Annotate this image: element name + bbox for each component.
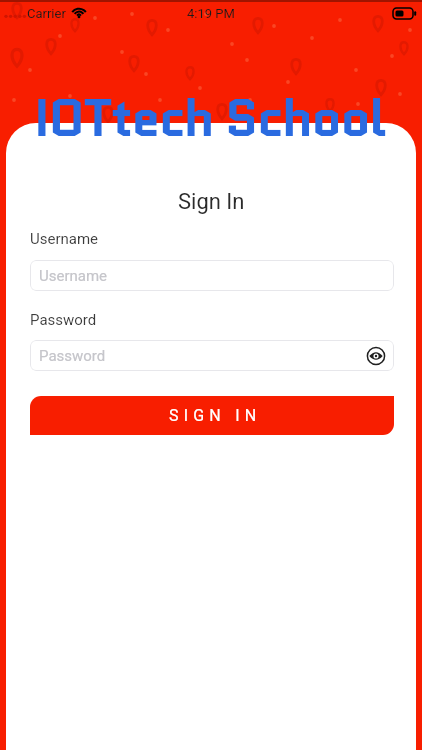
staticText: Username	[39, 267, 108, 285]
staticText: SIGN IN	[169, 406, 262, 425]
staticText: IOTtech School	[34, 82, 385, 155]
staticText: Username	[30, 230, 99, 248]
button[interactable]: Password	[30, 340, 394, 371]
staticText: Password	[39, 347, 106, 365]
staticText: Sign In	[178, 189, 245, 215]
button[interactable]: Show password	[365, 345, 387, 367]
staticText: 4:19 PM	[187, 6, 235, 21]
staticText: Carrier	[27, 6, 66, 21]
button[interactable]: Username	[30, 260, 394, 291]
button[interactable]: SIGN IN	[30, 396, 394, 435]
staticText: Password	[30, 311, 97, 329]
